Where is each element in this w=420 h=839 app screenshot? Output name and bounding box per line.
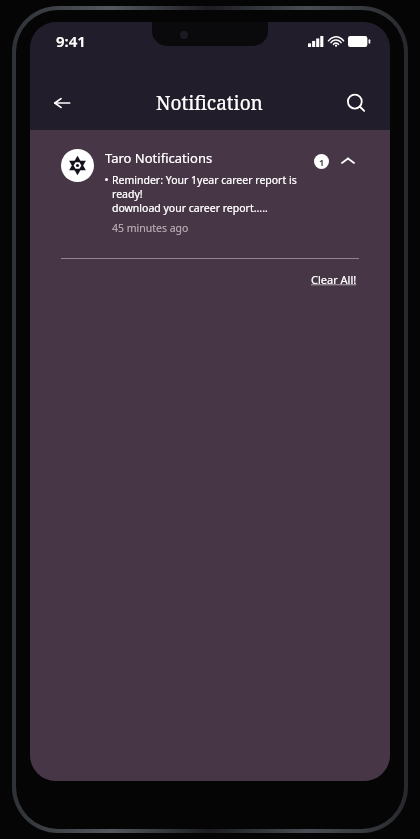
staticText: Clear All! (311, 272, 357, 287)
staticText: Taro Notifications (105, 149, 213, 167)
button[interactable]: Clear All! (309, 270, 359, 289)
button[interactable]: Taro Notifications (47, 135, 373, 299)
button[interactable]: Search (338, 85, 374, 121)
staticText: Notification (156, 90, 263, 116)
staticText: 1 (319, 156, 325, 168)
button[interactable]: Collapse (337, 150, 359, 172)
staticText: Reminder: Your 1year career report is re… (112, 173, 308, 215)
button[interactable]: Back (44, 85, 80, 121)
staticText: 9:41 (56, 31, 86, 51)
staticText: 45 minutes ago (112, 221, 189, 235)
